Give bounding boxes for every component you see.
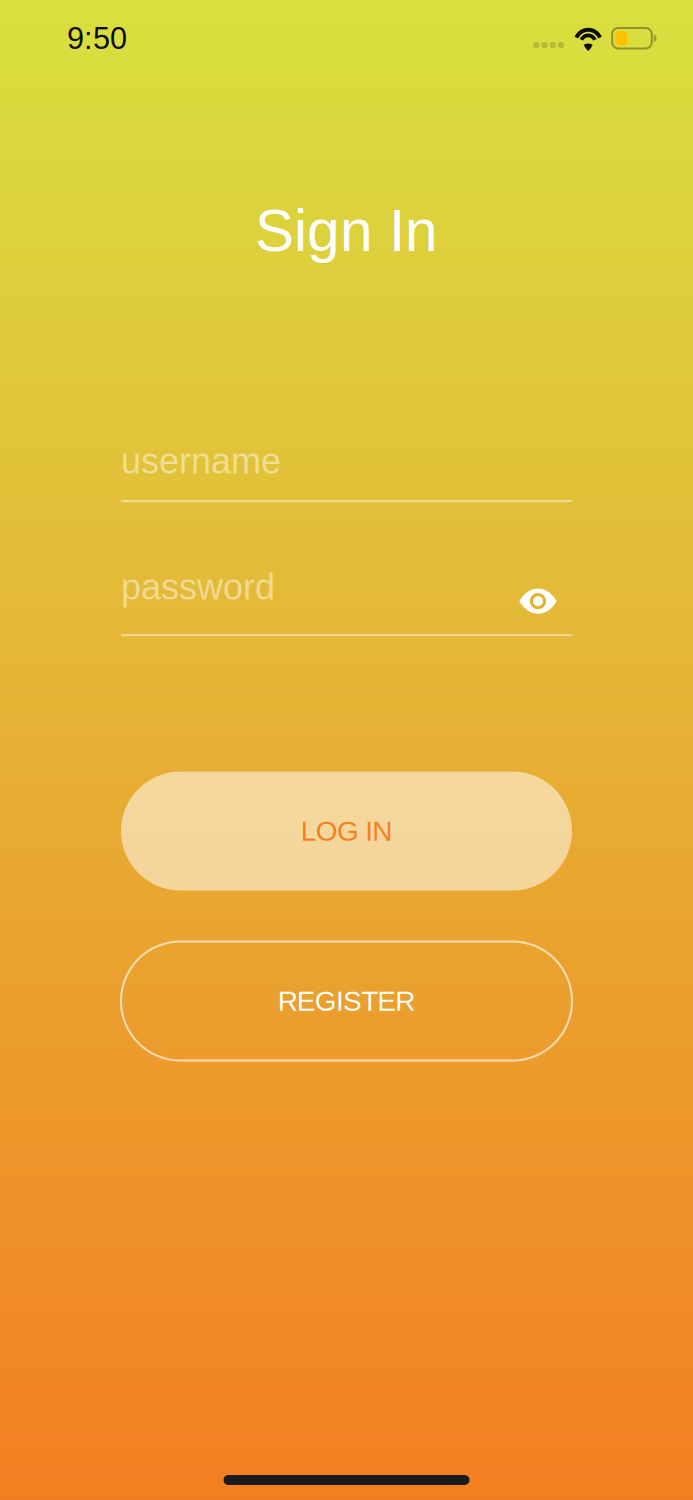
staticText: 9:50 <box>67 21 127 55</box>
staticText: username <box>121 441 281 481</box>
button[interactable]: Show password <box>509 576 567 626</box>
button[interactable]: REGISTER <box>121 941 572 1060</box>
staticText: Sign In <box>255 198 438 263</box>
staticText: REGISTER <box>278 985 415 1017</box>
staticText: password <box>121 567 275 607</box>
button[interactable]: LOG IN <box>121 771 572 890</box>
staticText: LOG IN <box>301 815 392 847</box>
